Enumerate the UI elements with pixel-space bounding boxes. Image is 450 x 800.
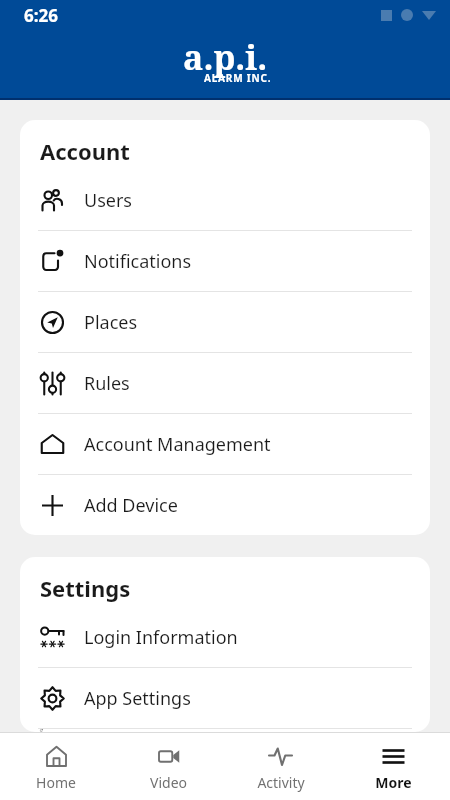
- staticText: Notifications: [84, 249, 192, 274]
- button[interactable]: Users: [20, 170, 430, 230]
- staticText: Users: [84, 188, 132, 213]
- button[interactable]: Account Management: [20, 414, 430, 474]
- staticText: Add Device: [84, 493, 178, 518]
- staticText: Places: [84, 310, 138, 335]
- button[interactable]: Notifications: [20, 231, 430, 291]
- button[interactable]: App Settings: [20, 668, 430, 728]
- button[interactable]: Rules: [20, 353, 430, 413]
- button[interactable]: Add Device: [20, 475, 430, 535]
- staticText: Login Information: [84, 625, 238, 650]
- staticText: App Settings: [84, 686, 191, 711]
- button[interactable]: Video: [112, 733, 224, 800]
- staticText: a.p.i.: [183, 34, 268, 80]
- staticText: More: [375, 773, 412, 792]
- staticText: Account Management: [84, 432, 271, 457]
- staticText: Home: [36, 773, 76, 792]
- staticText: Account: [40, 136, 130, 166]
- staticText: ALARM INC.: [204, 71, 272, 85]
- button[interactable]: More: [337, 733, 450, 800]
- button[interactable]: Login Information: [20, 607, 430, 667]
- staticText: Rules: [84, 371, 130, 396]
- button[interactable]: Notification Settings: [20, 729, 430, 732]
- button[interactable]: Places: [20, 292, 430, 352]
- staticText: Video: [150, 773, 187, 792]
- button[interactable]: Home: [0, 733, 112, 800]
- staticText: Settings: [40, 573, 131, 603]
- button[interactable]: Activity: [224, 733, 337, 800]
- staticText: 6:26: [24, 4, 58, 27]
- staticText: Activity: [257, 773, 305, 792]
